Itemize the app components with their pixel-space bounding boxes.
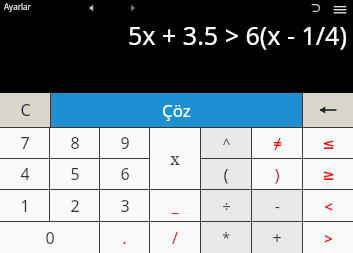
staticText: 3: [120, 195, 130, 217]
button[interactable]: (: [201, 159, 251, 189]
button[interactable]: Next: [128, 3, 138, 13]
button[interactable]: C: [0, 93, 50, 127]
staticText: *: [222, 228, 230, 247]
staticText: 7: [20, 132, 30, 154]
button[interactable]: _: [150, 190, 200, 221]
staticText: <: [324, 196, 333, 216]
button[interactable]: 4: [0, 159, 49, 189]
button[interactable]: >: [303, 222, 353, 253]
button[interactable]: ^: [201, 128, 251, 158]
button[interactable]: Backspace: [303, 93, 353, 127]
staticText: 0: [45, 227, 55, 249]
button[interactable]: 6: [100, 159, 149, 189]
button[interactable]: ÷: [201, 190, 251, 221]
button[interactable]: Çöz: [51, 93, 302, 127]
staticText: 9: [120, 132, 130, 154]
button[interactable]: 3: [100, 190, 149, 221]
staticText: 6: [120, 163, 130, 185]
button[interactable]: Ayarlar: [4, 1, 31, 12]
staticText: 2: [70, 195, 80, 217]
staticText: 5x + 3.5 > 6(x - 1/4): [128, 18, 347, 52]
button[interactable]: 9: [100, 128, 149, 158]
staticText: ÷: [222, 196, 231, 216]
button[interactable]: 5: [50, 159, 99, 189]
staticText: x: [170, 147, 180, 170]
staticText: ): [274, 163, 280, 186]
button[interactable]: ): [252, 159, 302, 189]
button[interactable]: Undo: [309, 2, 321, 14]
button[interactable]: 8: [50, 128, 99, 158]
staticText: C: [20, 99, 31, 121]
button[interactable]: /: [150, 222, 200, 253]
staticText: ≤: [322, 135, 335, 152]
staticText: ≠: [273, 133, 282, 153]
staticText: >: [324, 228, 333, 248]
button[interactable]: 0: [0, 222, 99, 253]
staticText: _: [171, 195, 179, 217]
staticText: 5: [70, 163, 80, 185]
staticText: 8: [70, 132, 80, 154]
button[interactable]: ≠: [252, 128, 302, 158]
button[interactable]: 1: [0, 190, 49, 221]
staticText: ≥: [322, 166, 335, 183]
staticText: ^: [222, 134, 231, 153]
button[interactable]: 2: [50, 190, 99, 221]
button[interactable]: 7: [0, 128, 49, 158]
button[interactable]: ≥: [303, 159, 353, 189]
staticText: +: [272, 227, 282, 249]
button[interactable]: ≤: [303, 128, 353, 158]
button[interactable]: -: [252, 190, 302, 221]
staticText: -: [275, 196, 280, 216]
button[interactable]: Previous: [86, 3, 96, 13]
staticText: 4: [20, 163, 30, 185]
button[interactable]: +: [252, 222, 302, 253]
button[interactable]: .: [100, 222, 149, 253]
staticText: Ayarlar: [4, 1, 31, 12]
button[interactable]: *: [201, 222, 251, 253]
button[interactable]: x: [150, 128, 200, 189]
staticText: Çöz: [162, 99, 191, 122]
staticText: (: [223, 163, 229, 186]
staticText: /: [172, 227, 178, 249]
staticText: .: [122, 227, 127, 249]
button[interactable]: Menu: [333, 3, 347, 17]
staticText: 1: [20, 195, 30, 217]
button[interactable]: <: [303, 190, 353, 221]
